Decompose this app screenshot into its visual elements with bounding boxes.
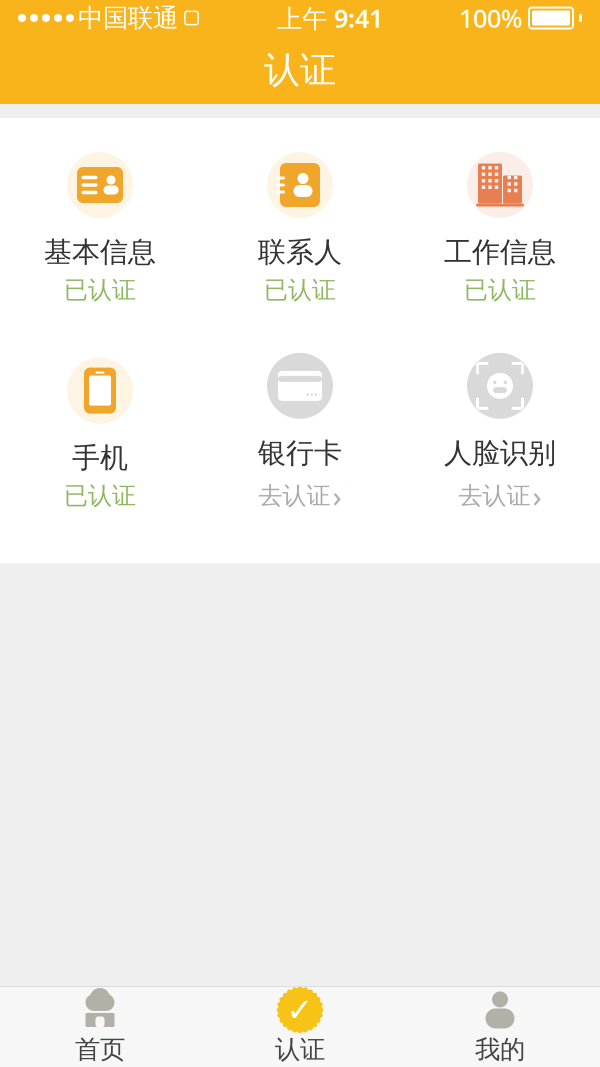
button[interactable]: 我的 <box>400 983 600 1067</box>
staticText: 手机 <box>72 441 128 475</box>
button[interactable]: 工作信息 <box>400 148 600 309</box>
staticText: 银行卡 <box>258 436 342 470</box>
button[interactable]: 银行卡 <box>200 349 400 519</box>
staticText: ✓ <box>286 992 313 1028</box>
staticText: 已认证 <box>64 275 136 305</box>
staticText: 100% <box>459 1 523 35</box>
staticText: 人脸识别 <box>444 436 556 470</box>
staticText: › <box>332 476 341 515</box>
staticText: 去认证 <box>458 481 530 510</box>
staticText: 工作信息 <box>444 235 556 269</box>
button[interactable]: ✓ <box>200 983 400 1067</box>
staticText: 已认证 <box>64 481 136 510</box>
staticText: 去认证 <box>258 481 330 510</box>
button[interactable]: 联系人 <box>200 148 400 309</box>
staticText: 基本信息 <box>44 235 156 269</box>
staticText: 认证 <box>264 48 336 92</box>
button[interactable]: 手机 <box>0 354 200 514</box>
button[interactable]: 人脸识别 <box>400 349 600 519</box>
button[interactable]: 首页 <box>0 983 200 1067</box>
staticText: 上午 9:41 <box>277 1 383 35</box>
staticText: 我的 <box>475 1034 525 1065</box>
staticText: 联系人 <box>258 235 342 269</box>
staticText: 已认证 <box>464 275 536 305</box>
staticText: 首页 <box>75 1034 125 1065</box>
button[interactable]: 基本信息 <box>0 148 200 309</box>
staticText: 认证 <box>275 1034 325 1065</box>
staticText: 已认证 <box>264 275 336 305</box>
staticText: 中国联通 <box>78 2 178 33</box>
button[interactable]: 认证 <box>0 36 600 104</box>
staticText: › <box>532 476 541 515</box>
